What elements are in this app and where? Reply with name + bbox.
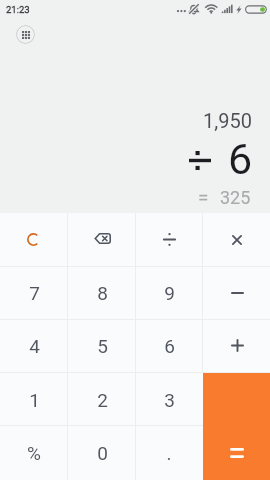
staticText: 325 [220, 187, 251, 208]
button[interactable]: More functions [16, 25, 35, 44]
button[interactable]: 6 [135, 319, 203, 372]
button[interactable]: Multiply [203, 213, 270, 266]
staticText: . [166, 442, 172, 464]
staticText: 1,950 [203, 109, 252, 132]
button[interactable]: Backspace [68, 213, 136, 266]
staticText: 5 [97, 335, 108, 357]
button[interactable] [0, 213, 68, 266]
staticText: 9 [164, 282, 175, 304]
button[interactable]: 4 [0, 319, 68, 372]
staticText: 21:23 [6, 4, 30, 15]
staticText: 6 [228, 134, 253, 182]
button[interactable]: Equals [203, 373, 270, 480]
staticText: 3 [164, 389, 175, 411]
button[interactable]: Divide [135, 213, 203, 266]
button[interactable]: Plus [203, 319, 270, 372]
staticText: 1 [29, 389, 40, 411]
button[interactable]: % [0, 426, 68, 479]
staticText: 7 [29, 282, 40, 304]
button[interactable]: 7 [0, 266, 68, 319]
button[interactable]: 5 [68, 319, 136, 372]
staticText: % [27, 442, 41, 464]
staticText: 6 [164, 335, 175, 357]
staticText: 8 [97, 282, 108, 304]
staticText: 2 [97, 389, 108, 411]
staticText: = [198, 186, 209, 208]
button[interactable]: 3 [135, 373, 203, 426]
button[interactable]: 1 [0, 373, 68, 426]
button[interactable]: . [135, 426, 203, 479]
button[interactable]: 0 [68, 426, 136, 479]
button[interactable]: 8 [68, 266, 136, 319]
staticText: 4 [29, 335, 40, 357]
button[interactable]: Minus [203, 266, 270, 319]
button[interactable]: 2 [68, 373, 136, 426]
button[interactable]: 9 [135, 266, 203, 319]
staticText: 0 [97, 442, 108, 464]
